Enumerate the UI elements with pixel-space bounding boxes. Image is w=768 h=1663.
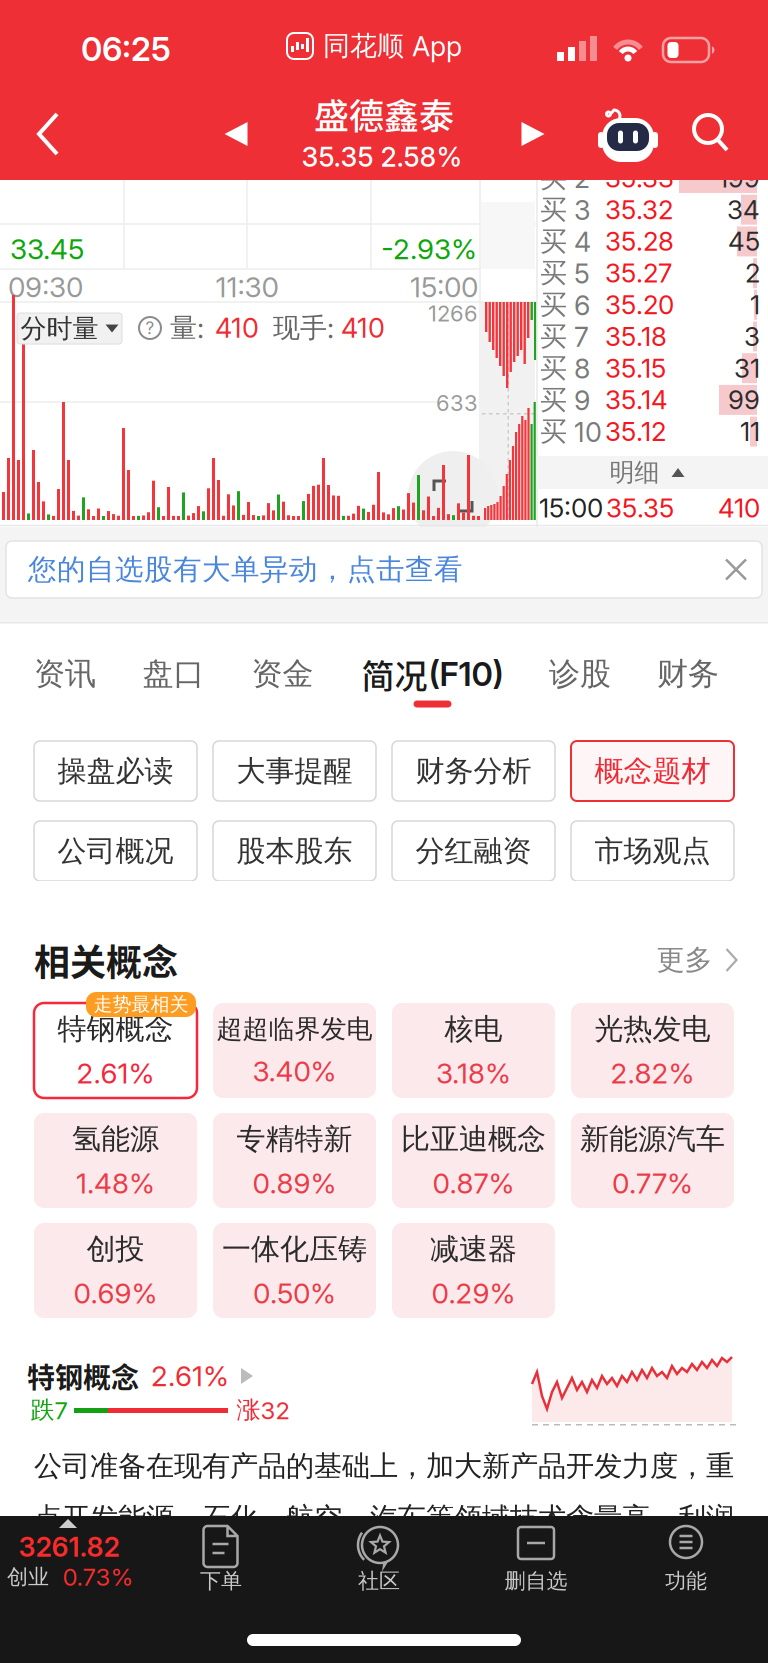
button[interactable]: 3261.82 — [0, 1516, 140, 1606]
staticText: 2.61% — [76, 1056, 154, 1090]
staticText: 15:00 — [410, 270, 478, 304]
button[interactable]: 超超临界发电 — [213, 1003, 376, 1098]
button[interactable]: 操盘必读 — [34, 741, 197, 801]
button[interactable]: 公司概况 — [34, 821, 197, 881]
button[interactable]: 创投 — [34, 1223, 197, 1318]
staticText: 特钢概念 — [27, 1356, 139, 1396]
button[interactable]: 简况 — [361, 650, 503, 698]
button[interactable]: 资讯 — [34, 654, 96, 694]
button[interactable]: 核电 — [392, 1003, 555, 1098]
button[interactable]: 您的自选股有大单异动，点击查看 — [6, 541, 762, 598]
staticText: 同花顺 App — [323, 29, 462, 63]
button[interactable]: 市场观点 — [571, 821, 734, 881]
button[interactable]: 减速器 — [392, 1223, 555, 1318]
staticText: 氢能源 — [72, 1121, 159, 1157]
staticText: 35.28 — [605, 226, 674, 257]
button[interactable]: 资金 — [251, 654, 313, 694]
staticText: 35.27 — [605, 257, 672, 289]
button[interactable]: 分红融资 — [392, 821, 555, 881]
staticText: 33.45 — [10, 232, 84, 266]
staticText: 盛德鑫泰 — [314, 89, 454, 139]
staticText: (F10) — [428, 654, 503, 694]
button[interactable]: 概念题材 — [571, 741, 734, 801]
button[interactable]: 大事提醒 — [213, 741, 376, 801]
staticText: 现手: — [273, 311, 334, 345]
staticText: 买 5 — [540, 256, 590, 290]
button[interactable]: 比亚迪概念 — [392, 1113, 555, 1208]
staticText: 公司准备在现有产品的基础上，加大新产品开发力度，重 — [34, 1448, 734, 1484]
button[interactable]: 光热发电 — [571, 1003, 734, 1098]
button[interactable]: 社区 — [319, 1516, 439, 1610]
staticText: 35.33 — [605, 162, 674, 194]
button[interactable]: 盘口 — [142, 654, 204, 694]
staticText: 0.89% — [252, 1166, 336, 1200]
staticText: 31 — [734, 352, 760, 384]
button[interactable]: 一体化压铸 — [213, 1223, 376, 1318]
staticText: 走势最相关 — [93, 992, 188, 1016]
staticText: 199 — [718, 162, 760, 194]
staticText: 跌7 — [30, 1395, 67, 1425]
staticText: 633 — [436, 390, 478, 416]
staticText: 涨32 — [236, 1395, 289, 1425]
staticText: 0.77% — [612, 1166, 693, 1200]
staticText: 创业 — [7, 1564, 49, 1590]
button[interactable]: 财务分析 — [392, 741, 555, 801]
staticText: 11:30 — [215, 270, 278, 304]
staticText: 35.35 2.58% — [301, 141, 462, 173]
staticText: 买 4 — [540, 224, 591, 258]
button[interactable]: 删自选 — [466, 1516, 606, 1610]
button[interactable]: 诊股 — [549, 654, 611, 694]
button[interactable]: Back — [38, 114, 60, 154]
button[interactable]: 新能源汽车 — [571, 1113, 734, 1208]
button[interactable]: 特钢概念 — [34, 1003, 197, 1098]
staticText: 410 — [341, 312, 385, 344]
staticText: 15:00 — [539, 492, 603, 524]
staticText: 买 10 — [540, 415, 602, 449]
staticText: 3.40% — [252, 1054, 336, 1088]
staticText: 删自选 — [504, 1568, 567, 1594]
staticText: 35.18 — [605, 321, 667, 352]
button[interactable]: Help — [138, 316, 162, 340]
button[interactable]: Previous stock — [224, 122, 247, 146]
staticText: 更多 — [656, 942, 712, 978]
staticText: 下单 — [200, 1568, 242, 1594]
staticText: 09:30 — [8, 270, 83, 304]
staticText: 0.29% — [431, 1276, 515, 1310]
button[interactable]: 更多 — [656, 942, 737, 978]
staticText: 功能 — [665, 1568, 707, 1594]
button[interactable]: AI assistant — [600, 107, 656, 163]
button[interactable]: 功能 — [626, 1516, 746, 1610]
staticText: 大事提醒 — [236, 753, 352, 789]
staticText: 分时量 — [20, 312, 98, 345]
button[interactable]: 下单 — [161, 1516, 281, 1610]
staticText: 买 8 — [540, 351, 590, 385]
button[interactable]: Search — [692, 114, 730, 152]
staticText: 1266 — [428, 300, 478, 327]
staticText: 创投 — [86, 1231, 144, 1267]
button[interactable]: 特钢概念 — [27, 1356, 253, 1396]
staticText: 诊股 — [549, 654, 611, 694]
button[interactable]: 财务 — [657, 654, 719, 694]
staticText: 买 3 — [540, 193, 590, 227]
button[interactable]: 明细 — [609, 457, 684, 488]
staticText: 0.73% — [62, 1562, 133, 1591]
staticText: 一体化压铸 — [222, 1231, 367, 1267]
staticText: 操盘必读 — [57, 753, 173, 789]
staticText: 35.32 — [605, 194, 673, 225]
staticText: 06:25 — [81, 29, 171, 69]
staticText: 11 — [740, 416, 760, 447]
staticText: 410 — [718, 492, 760, 524]
staticText: 财务 — [657, 654, 719, 694]
button[interactable]: Next stock — [521, 122, 544, 146]
staticText: 减速器 — [430, 1231, 517, 1267]
staticText: 35.14 — [605, 384, 668, 416]
staticText: 1.48% — [76, 1166, 155, 1200]
staticText: 买 9 — [540, 383, 590, 417]
staticText: ? — [145, 318, 154, 338]
staticText: 45 — [728, 226, 760, 257]
staticText: 资讯 — [34, 654, 96, 694]
button[interactable]: 股本股东 — [213, 821, 376, 881]
button[interactable]: 氢能源 — [34, 1113, 197, 1208]
button[interactable]: 专精特新 — [213, 1113, 376, 1208]
button[interactable]: 分时量 — [17, 313, 122, 344]
